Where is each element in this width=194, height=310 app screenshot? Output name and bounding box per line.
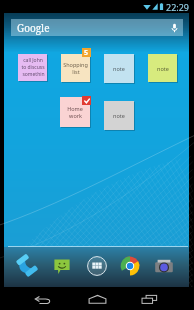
button[interactable]: Home	[79, 288, 116, 310]
button[interactable]: call John	[18, 54, 47, 81]
button[interactable]: Home	[60, 97, 90, 127]
button[interactable]: Shopping	[61, 54, 90, 82]
staticText: to discuss	[21, 64, 45, 71]
button[interactable]: Google	[11, 19, 183, 36]
staticText: 5	[84, 48, 89, 57]
button[interactable]: Phone	[15, 257, 35, 277]
staticText: note	[157, 65, 169, 72]
button[interactable]: note	[104, 101, 134, 130]
button[interactable]: Done	[82, 96, 91, 105]
button[interactable]: Camera	[154, 257, 174, 277]
staticText: call John	[23, 57, 43, 64]
button[interactable]: Apps	[87, 256, 107, 276]
staticText: 22:29	[166, 1, 190, 13]
other: Voice search	[171, 23, 178, 33]
button[interactable]: note	[148, 54, 177, 82]
staticText: work	[69, 112, 82, 119]
staticText: list	[72, 68, 80, 75]
staticText: Shopping	[63, 61, 88, 68]
button[interactable]: note	[104, 54, 134, 83]
button[interactable]: Recents	[133, 288, 166, 310]
staticText: Google	[17, 21, 50, 35]
button[interactable]: Messaging	[52, 256, 72, 276]
button[interactable]: 5 items	[82, 48, 91, 57]
staticText: note	[113, 112, 125, 119]
staticText: Home	[67, 105, 83, 112]
staticText: somethin	[22, 71, 45, 78]
button[interactable]: Back	[26, 288, 58, 310]
staticText: note	[113, 65, 125, 72]
button[interactable]: Chrome	[120, 256, 140, 276]
